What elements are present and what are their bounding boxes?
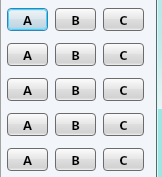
button[interactable]: C xyxy=(103,113,144,136)
button[interactable]: B xyxy=(55,148,96,171)
button[interactable]: C xyxy=(103,43,144,66)
button[interactable]: A xyxy=(7,43,48,66)
staticText: B xyxy=(71,46,80,64)
staticText: C xyxy=(119,46,128,64)
button[interactable]: C xyxy=(103,78,144,101)
button[interactable]: A xyxy=(7,8,48,31)
staticText: C xyxy=(119,81,128,99)
staticText: B xyxy=(71,81,80,99)
button[interactable]: B xyxy=(55,78,96,101)
button[interactable]: A xyxy=(7,78,48,101)
button[interactable]: A xyxy=(7,148,48,171)
staticText: B xyxy=(71,151,80,169)
button[interactable]: C xyxy=(103,148,144,171)
button[interactable]: C xyxy=(103,8,144,31)
staticText: B xyxy=(71,116,80,134)
staticText: A xyxy=(23,81,32,99)
staticText: C xyxy=(119,116,128,134)
staticText: A xyxy=(23,46,32,64)
staticText: C xyxy=(119,11,128,29)
staticText: A xyxy=(23,116,32,134)
button[interactable]: B xyxy=(55,113,96,136)
button[interactable]: A xyxy=(7,113,48,136)
staticText: A xyxy=(23,11,32,29)
staticText: A xyxy=(23,151,32,169)
button[interactable]: B xyxy=(55,8,96,31)
staticText: B xyxy=(71,11,80,29)
staticText: C xyxy=(119,151,128,169)
button[interactable]: B xyxy=(55,43,96,66)
